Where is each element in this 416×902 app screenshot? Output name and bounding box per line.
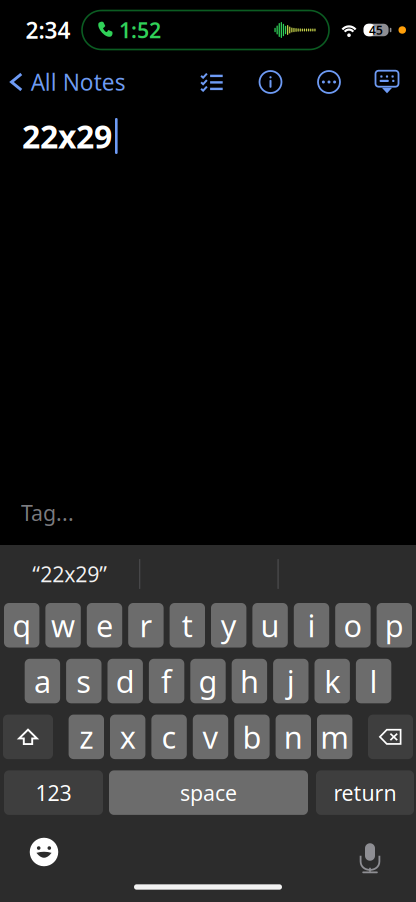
staticText: All Notes xyxy=(31,67,126,97)
staticText: 45 xyxy=(369,22,383,38)
button[interactable]: q xyxy=(4,603,39,647)
button[interactable]: o xyxy=(335,603,371,647)
button[interactable]: Checklist xyxy=(183,60,241,104)
button[interactable]: Shift xyxy=(3,715,53,759)
staticText: q xyxy=(12,605,31,646)
staticText: l xyxy=(370,661,378,701)
button[interactable]: Emoji xyxy=(15,829,73,875)
staticText: i xyxy=(307,605,315,646)
staticText: r xyxy=(139,605,152,646)
staticText: x xyxy=(120,716,136,757)
staticText: y xyxy=(221,605,237,646)
staticText: space xyxy=(180,778,237,807)
staticText: k xyxy=(324,661,340,701)
button[interactable]: r xyxy=(128,603,164,647)
button[interactable]: b xyxy=(234,715,270,759)
staticText: return xyxy=(333,778,396,807)
button[interactable]: s xyxy=(66,659,101,703)
staticText: j xyxy=(287,661,295,701)
staticText: m xyxy=(320,716,349,757)
button[interactable]: Info xyxy=(241,60,300,104)
button[interactable]: n xyxy=(276,715,311,759)
staticText: g xyxy=(198,661,217,701)
button[interactable]: t xyxy=(170,603,205,647)
staticText: a xyxy=(34,661,51,701)
button[interactable]: e xyxy=(87,603,122,647)
button[interactable]: p xyxy=(377,603,412,647)
staticText: u xyxy=(261,605,280,646)
button[interactable]: i xyxy=(294,603,329,647)
staticText: c xyxy=(162,716,177,757)
staticText: t xyxy=(182,605,193,646)
staticText: o xyxy=(343,605,362,646)
button[interactable]: More xyxy=(300,60,358,104)
button[interactable]: h xyxy=(232,659,267,703)
staticText: 1:52 xyxy=(119,16,161,44)
button[interactable]: l xyxy=(356,659,391,703)
button[interactable]: z xyxy=(69,715,104,759)
button[interactable]: u xyxy=(252,603,288,647)
button[interactable]: j xyxy=(273,659,308,703)
button[interactable]: Tag... xyxy=(0,493,74,533)
button[interactable]: v xyxy=(193,715,228,759)
button[interactable]: c xyxy=(151,715,187,759)
button[interactable]: 123 xyxy=(4,770,103,815)
button[interactable]: “22x29” xyxy=(0,545,139,603)
staticText: d xyxy=(116,661,135,701)
staticText: h xyxy=(240,661,259,701)
button[interactable]: d xyxy=(107,659,143,703)
button[interactable]: return xyxy=(316,770,414,815)
staticText: 123 xyxy=(35,778,71,807)
button[interactable]: space xyxy=(109,770,308,815)
staticText: “22x29” xyxy=(32,560,107,588)
button[interactable]: g xyxy=(190,659,226,703)
staticText: n xyxy=(284,716,303,757)
staticText: Tag... xyxy=(21,499,74,527)
staticText: e xyxy=(96,605,113,646)
button[interactable]: k xyxy=(314,659,350,703)
button[interactable]: x xyxy=(110,715,145,759)
button[interactable]: f xyxy=(149,659,184,703)
staticText: f xyxy=(161,661,172,701)
button[interactable]: a xyxy=(25,659,60,703)
staticText: z xyxy=(79,716,93,757)
button[interactable]: m xyxy=(317,715,352,759)
staticText: 22x29 xyxy=(22,115,112,157)
button[interactable]: Dictation xyxy=(341,829,399,875)
staticText: s xyxy=(76,661,91,701)
staticText: w xyxy=(51,605,75,646)
button[interactable]: Delete xyxy=(368,715,413,759)
staticText: b xyxy=(242,716,261,757)
button[interactable]: w xyxy=(45,603,81,647)
staticText: v xyxy=(202,716,218,757)
staticText: 2:34 xyxy=(25,15,70,45)
button[interactable]: y xyxy=(211,603,246,647)
button[interactable]: All Notes xyxy=(0,60,134,104)
button[interactable]: Hide Keyboard xyxy=(358,60,416,104)
staticText: p xyxy=(385,605,404,646)
